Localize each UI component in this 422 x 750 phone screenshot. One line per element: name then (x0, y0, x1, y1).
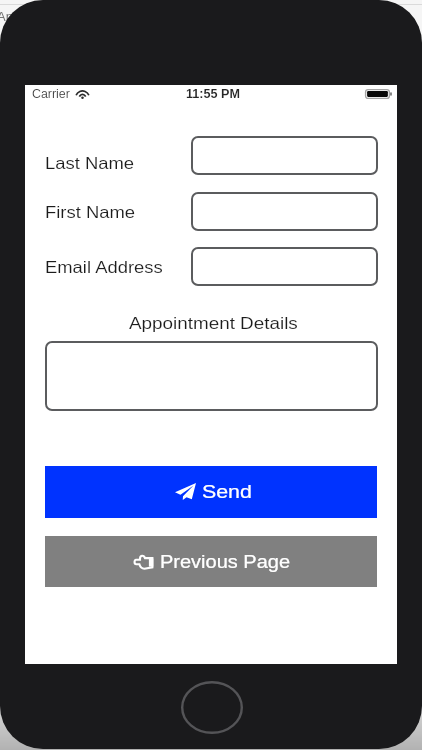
button[interactable]: Previous Page (45, 536, 377, 587)
staticText: Carrier (32, 87, 70, 101)
button[interactable] (45, 341, 378, 411)
button[interactable] (191, 247, 378, 286)
staticText: Email Address (45, 258, 164, 276)
staticText: First Name (45, 203, 135, 221)
staticText: Send (202, 481, 253, 502)
staticText: Last Name (45, 154, 134, 172)
staticText: 11:55 PM (186, 87, 240, 101)
button[interactable] (191, 192, 378, 231)
button[interactable]: Home (181, 681, 243, 734)
button[interactable] (191, 136, 378, 175)
staticText: An (0, 9, 13, 24)
button[interactable]: Send (45, 466, 377, 518)
staticText: Appointment Details (129, 314, 298, 333)
staticText: Previous Page (160, 552, 291, 572)
